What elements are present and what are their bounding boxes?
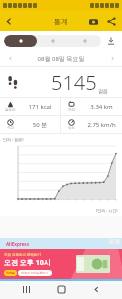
staticText: 171 kcal: [20, 103, 60, 111]
button[interactable]: Download: [104, 34, 118, 48]
staticText: 거리: [68, 108, 75, 112]
staticText: AliExpress: [6, 241, 29, 247]
button[interactable]: Steps: [4, 35, 37, 47]
staticText: 오전 오후 10시: [4, 258, 51, 268]
staticText: 단위 : 걸음): [3, 137, 24, 142]
button[interactable]: 속도: [61, 116, 122, 133]
button[interactable]: Back: [0, 12, 18, 30]
button[interactable]: Advertisement: [0, 249, 122, 279]
button[interactable]: Camera: [85, 13, 101, 29]
staticText: 시간: [7, 126, 14, 130]
button[interactable]: Share: [103, 13, 119, 29]
staticText: 5145: [51, 69, 97, 96]
staticText: 통계: [54, 17, 68, 26]
button[interactable]: 칼로리: [0, 98, 60, 115]
staticText: (단위 : 시간): [96, 208, 118, 213]
staticText: 지금 신청하고 혜택받기: [4, 252, 41, 257]
button[interactable]: Heart: [37, 35, 69, 47]
staticText: 칼로리: [5, 108, 16, 112]
button[interactable]: 시간: [0, 116, 60, 133]
staticText: 08월 08일 목요일: [20, 55, 102, 63]
staticText: 2.75 km/h: [81, 121, 122, 129]
staticText: 3.34 km: [81, 103, 122, 111]
staticText: 대상자 선착순확인 >: [21, 271, 49, 275]
button[interactable]: Recents: [17, 280, 35, 298]
button[interactable]: Next day: [102, 51, 122, 66]
staticText: 걸음: [98, 88, 108, 94]
staticText: 선착순: [6, 271, 15, 275]
staticText: 50 분: [20, 121, 60, 129]
button[interactable]: Back: [87, 280, 105, 298]
button[interactable]: Home: [52, 280, 70, 298]
button[interactable]: 거리: [61, 98, 122, 115]
staticText: 속도: [68, 126, 75, 130]
button[interactable]: Sleep: [69, 35, 101, 47]
button[interactable]: Previous day: [0, 51, 20, 66]
